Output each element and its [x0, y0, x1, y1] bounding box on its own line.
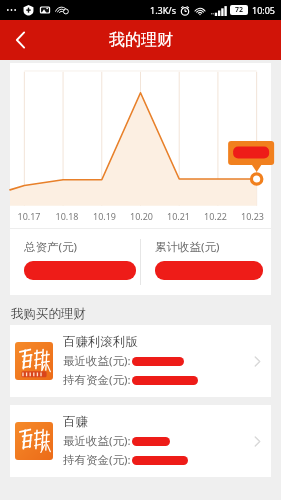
button[interactable]: 返回: [0, 20, 40, 60]
button[interactable]: 百赚: [10, 405, 271, 477]
staticText: 百赚利滚利版: [63, 334, 138, 350]
staticText: 72: [235, 5, 244, 15]
staticText: 10.17: [10, 210, 48, 222]
staticText: 我购买的理财: [11, 306, 86, 322]
staticText: 最近收益(元):: [63, 353, 131, 369]
staticText: 累计收益(元): [155, 239, 220, 255]
staticText: 总资产(元): [24, 239, 77, 255]
staticText: 我的理财: [109, 30, 173, 50]
staticText: 持有资金(元):: [63, 372, 131, 388]
staticText: 10.18: [48, 210, 86, 222]
staticText: 10.23: [234, 210, 271, 222]
staticText: 10.22: [197, 210, 234, 222]
staticText: 10.21: [160, 210, 197, 222]
staticText: 1.3K/s: [150, 4, 176, 16]
staticText: 最近收益(元):: [63, 433, 131, 449]
staticText: 10:05: [252, 4, 276, 16]
button[interactable]: 百赚利滚利版: [10, 325, 271, 397]
staticText: 10.20: [123, 210, 160, 222]
staticText: 百赚: [63, 414, 88, 430]
staticText: 持有资金(元):: [63, 452, 131, 468]
staticText: 10.19: [86, 210, 123, 222]
